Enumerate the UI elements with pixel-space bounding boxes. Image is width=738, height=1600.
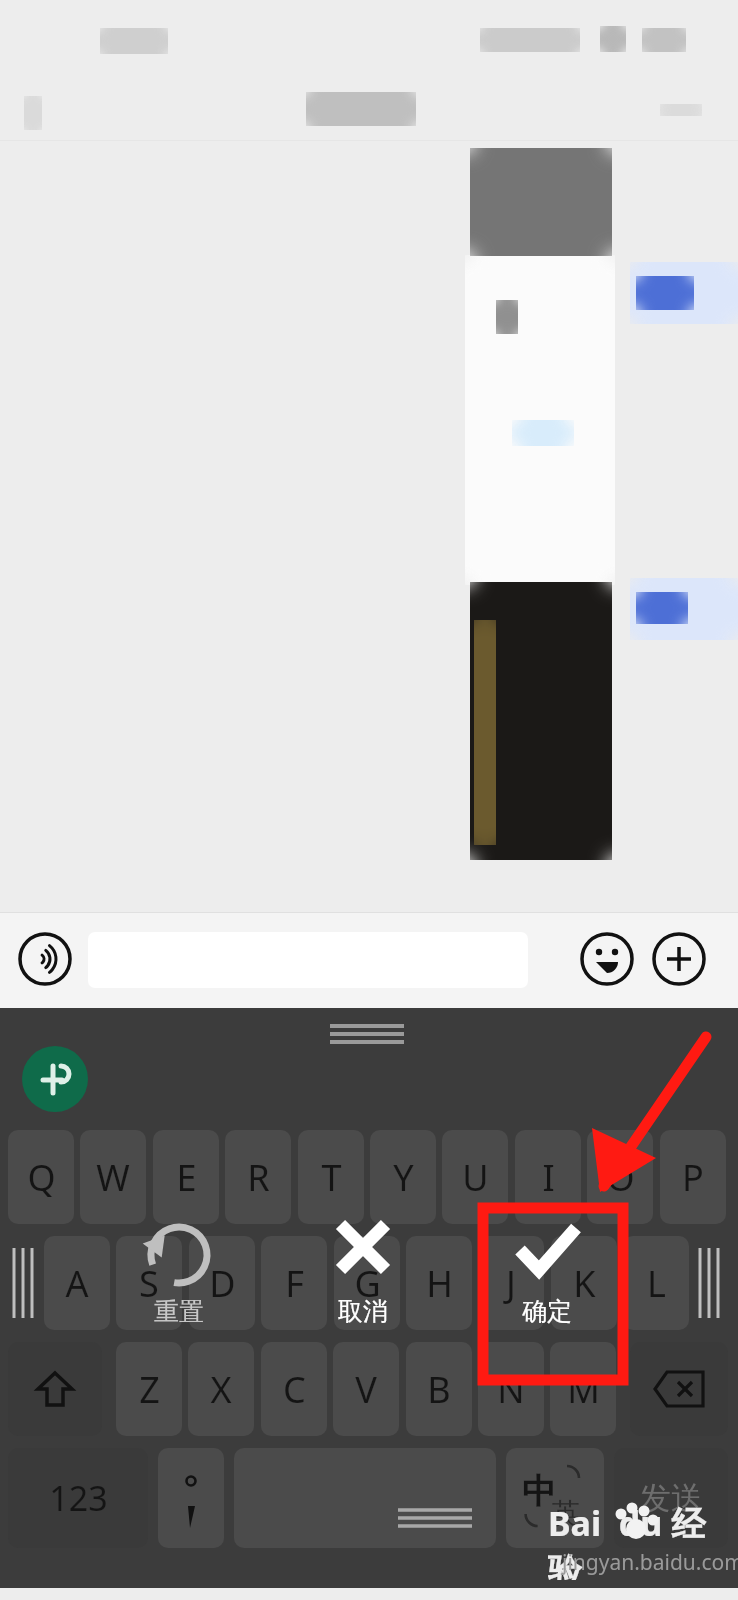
staticText: J (506, 1259, 516, 1308)
staticText: Y (393, 1153, 414, 1202)
button[interactable]: H (406, 1236, 472, 1330)
button[interactable]: E (153, 1130, 219, 1224)
staticText: V (355, 1365, 377, 1414)
button[interactable]: M (550, 1342, 616, 1436)
staticText: N (497, 1365, 525, 1414)
staticText: Bai du 经验 (548, 1500, 730, 1580)
button[interactable]: X (188, 1342, 254, 1436)
staticText: W (96, 1153, 130, 1202)
button[interactable]: Q (8, 1130, 74, 1224)
button[interactable]: I (515, 1130, 581, 1224)
button[interactable]: R (225, 1130, 291, 1224)
button[interactable]: Input method logo (22, 1046, 88, 1112)
staticText: A (65, 1259, 89, 1308)
staticText: 取消 (332, 1296, 394, 1327)
button[interactable]: Punctuation (158, 1448, 224, 1548)
button[interactable]: G (334, 1236, 400, 1330)
button[interactable]: More actions (652, 932, 706, 986)
button[interactable]: T (298, 1130, 364, 1224)
staticText: K (573, 1259, 596, 1308)
button[interactable]: S (116, 1236, 182, 1330)
button[interactable]: V (333, 1342, 399, 1436)
button[interactable]: F (261, 1236, 327, 1330)
staticText: I (542, 1153, 555, 1202)
staticText: U (462, 1153, 489, 1202)
staticText: T (321, 1153, 342, 1202)
button[interactable]: J (478, 1236, 544, 1330)
button[interactable]: N (478, 1342, 544, 1436)
button[interactable]: W (80, 1130, 146, 1224)
staticText: F (285, 1259, 304, 1308)
button[interactable]: Shift (8, 1342, 102, 1436)
staticText: H (426, 1259, 453, 1308)
button[interactable]: Voice input (18, 932, 72, 986)
button[interactable]: 发送 (614, 1448, 728, 1548)
staticText: 123 (49, 1475, 108, 1521)
button[interactable]: L (623, 1236, 689, 1330)
button[interactable]: Switch Chinese English (506, 1448, 604, 1548)
staticText: X (210, 1365, 232, 1414)
staticText: 英 (552, 1496, 580, 1531)
staticText: 中 (522, 1470, 556, 1513)
staticText: B (427, 1365, 451, 1414)
staticText: R (247, 1153, 270, 1202)
button[interactable]: A (44, 1236, 110, 1330)
staticText: 确定 (514, 1296, 580, 1327)
button[interactable]: Y (370, 1130, 436, 1224)
staticText: Z (139, 1365, 160, 1414)
staticText: 发送 (639, 1478, 703, 1518)
staticText: O (606, 1153, 635, 1202)
staticText: E (176, 1153, 197, 1202)
staticText: jingyan.baidu.com (562, 1548, 738, 1577)
staticText: D (209, 1259, 236, 1308)
button[interactable]: C (261, 1342, 327, 1436)
button[interactable]: P (660, 1130, 726, 1224)
button[interactable]: B (406, 1342, 472, 1436)
staticText: P (682, 1153, 704, 1202)
button[interactable]: Backspace (630, 1342, 728, 1436)
button[interactable]: D (189, 1236, 255, 1330)
staticText: G (354, 1259, 381, 1308)
button[interactable]: K (551, 1236, 617, 1330)
staticText: M (567, 1365, 600, 1414)
staticText: 重置 (146, 1296, 212, 1327)
button[interactable]: O (587, 1130, 653, 1224)
button[interactable]: Z (116, 1342, 182, 1436)
staticText: L (647, 1259, 666, 1308)
staticText: C (283, 1365, 306, 1414)
staticText: S (139, 1259, 159, 1308)
button[interactable]: U (442, 1130, 508, 1224)
staticText: Q (27, 1153, 56, 1202)
button[interactable]: Space (234, 1448, 496, 1548)
button[interactable]: 123 (8, 1448, 148, 1548)
button[interactable]: Emoji (580, 932, 634, 986)
